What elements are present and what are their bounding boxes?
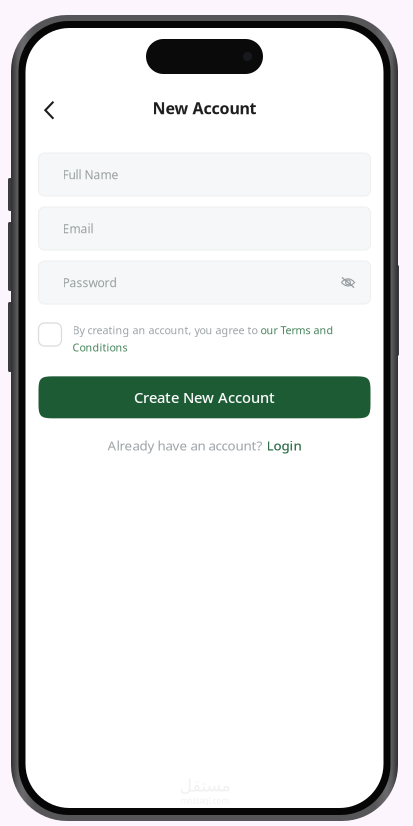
button[interactable]: By creating an account, you agree to: [38, 323, 370, 354]
staticText: By creating an account, you agree to: [72, 323, 260, 337]
staticText: Full Name: [62, 166, 118, 182]
button[interactable]: Back: [31, 90, 67, 126]
staticText: Already have an account?: [107, 436, 262, 454]
staticText: mostaql.com: [180, 795, 228, 806]
staticText: Email: [62, 220, 93, 236]
button[interactable]: Create New Account: [38, 376, 370, 418]
staticText: مستقل: [179, 776, 230, 795]
button[interactable]: Email: [38, 207, 370, 250]
staticText: Conditions: [72, 340, 127, 354]
staticText: New Account: [152, 97, 256, 119]
staticText: Password: [62, 274, 116, 290]
button[interactable]: Already have an account?: [107, 433, 301, 457]
staticText: Create New Account: [134, 388, 275, 407]
button[interactable]: Full Name: [38, 153, 370, 196]
staticText: our Terms and: [260, 323, 333, 337]
staticText: Login: [266, 436, 301, 454]
button[interactable]: Password: [38, 261, 370, 304]
